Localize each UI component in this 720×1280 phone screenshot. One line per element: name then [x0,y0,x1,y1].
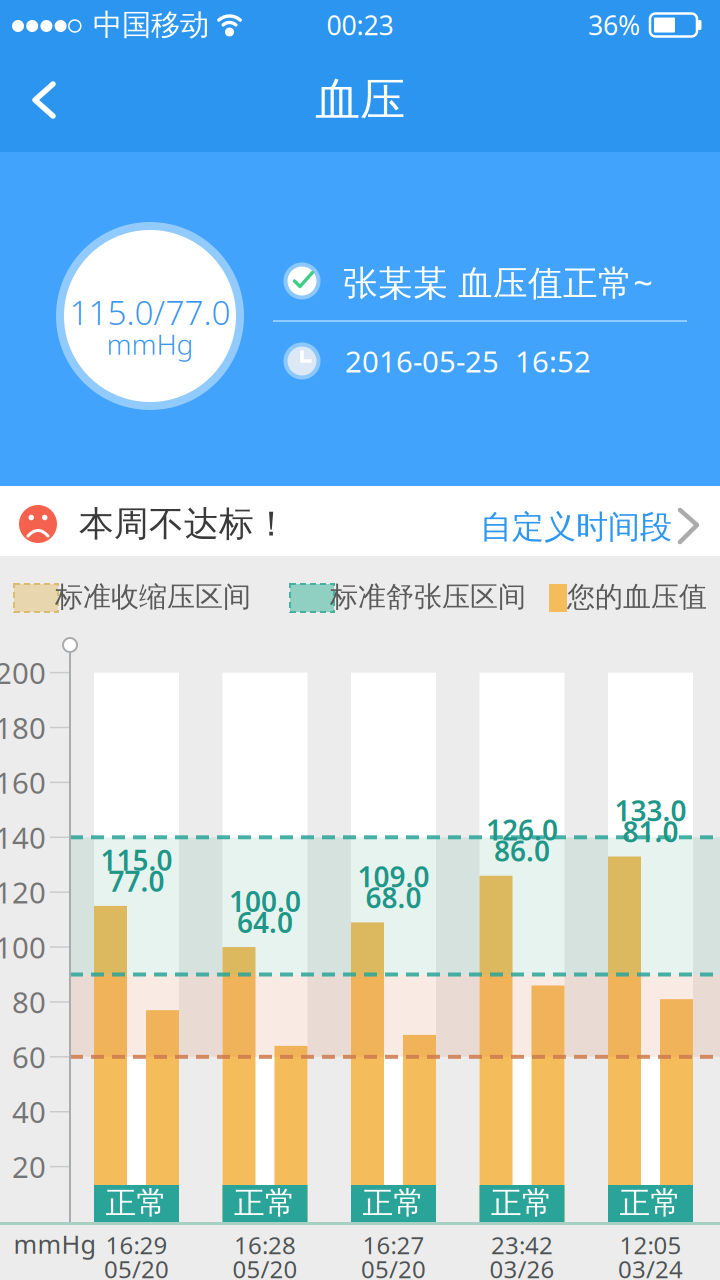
staticText: 180 [0,708,46,747]
staticText: 正常 [619,1184,681,1222]
staticText: 12:05 [619,1229,681,1261]
staticText: 20 [12,1147,46,1186]
staticText: 115.0/77.0 [69,290,230,334]
staticText: mmHg [106,325,193,363]
button[interactable] [15,72,85,128]
staticText: 自定义时间段 [480,507,672,547]
staticText: 120 [0,873,46,912]
staticText: 23:42 [491,1229,553,1261]
staticText: 张某某 血压值正常~ [343,259,653,305]
staticText: 16:27 [362,1229,424,1261]
staticText: 140 [0,818,46,857]
staticText: 您的血压值 [567,580,707,614]
staticText: 16:28 [234,1229,296,1261]
staticText: 16:29 [105,1229,167,1261]
staticText: 03/26 [489,1253,554,1280]
staticText: 200 [0,653,46,692]
staticText: 80 [12,982,46,1021]
staticText: 160 [0,763,46,802]
button[interactable]: 自定义时间段 [450,489,706,559]
staticText: 血压 [315,72,405,128]
staticText: 05/20 [361,1253,426,1280]
staticText: 05/20 [232,1253,297,1280]
staticText: 中国移动 [93,7,209,43]
staticText: 00:23 [326,7,393,43]
staticText: 86.0 [494,832,550,869]
staticText: 标准收缩压区间 [55,580,251,614]
staticText: 36% [588,7,640,43]
staticText: 115.0 [100,841,172,878]
staticText: 68.0 [365,879,421,916]
staticText: 77.0 [108,862,164,899]
staticText: 81.0 [622,813,678,850]
staticText: 60 [12,1037,46,1076]
staticText: 133.0 [614,792,686,829]
staticText: 2016-05-25 16:52 [345,341,591,380]
staticText: 109.0 [357,858,429,895]
staticText: 正常 [362,1184,424,1222]
staticText: 正常 [105,1184,167,1222]
staticText: 标准舒张压区间 [330,580,526,614]
staticText: 40 [12,1092,46,1131]
staticText: 100.0 [229,882,301,920]
staticText: 100 [0,928,46,967]
staticText: 03/24 [618,1253,683,1280]
staticText: 正常 [234,1184,296,1222]
staticText: 05/20 [104,1253,169,1280]
staticText: mmHg [13,1227,96,1261]
staticText: 正常 [491,1184,553,1222]
staticText: 本周不达标！ [79,503,289,545]
staticText: 64.0 [237,903,293,941]
staticText: 126.0 [486,811,558,848]
